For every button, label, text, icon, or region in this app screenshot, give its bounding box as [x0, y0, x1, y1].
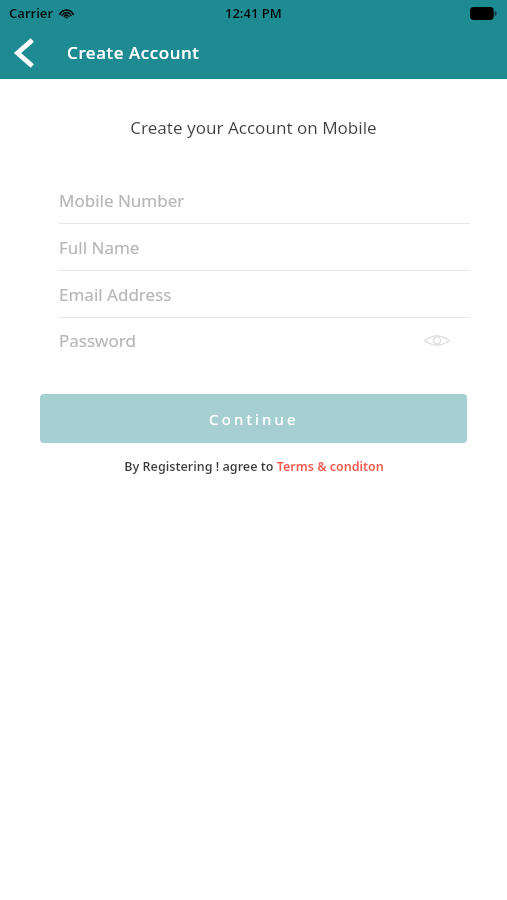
- button[interactable]: Back: [0, 29, 48, 77]
- staticText: Email Address: [59, 283, 172, 306]
- button[interactable]: Password: [0, 318, 507, 362]
- staticText: Create your Account on Mobile: [0, 116, 507, 139]
- button[interactable]: Email Address: [0, 271, 507, 317]
- staticText: By Registering ! agree to Terms & condit…: [124, 458, 384, 475]
- button[interactable]: Show password: [421, 324, 453, 356]
- staticText: 12:41 PM: [225, 4, 282, 22]
- staticText: Continue: [209, 409, 299, 429]
- staticText: Full Name: [59, 236, 140, 259]
- button[interactable]: Mobile Number: [0, 177, 507, 223]
- button[interactable]: Full Name: [0, 224, 507, 270]
- staticText: Mobile Number: [59, 189, 185, 212]
- button[interactable]: Continue: [40, 394, 467, 443]
- staticText: Create Account: [67, 41, 200, 64]
- staticText: Password: [59, 329, 136, 352]
- button[interactable]: By Registering ! agree to Terms & condit…: [0, 458, 507, 475]
- staticText: Carrier: [9, 4, 54, 22]
